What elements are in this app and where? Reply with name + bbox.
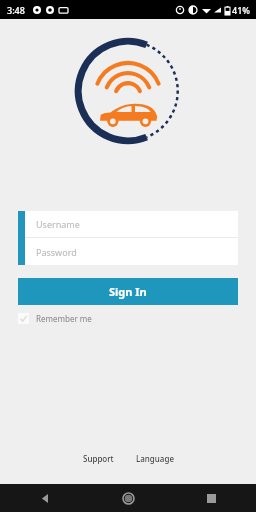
button[interactable]: Support <box>76 449 121 468</box>
button[interactable]: Home <box>117 487 139 509</box>
staticText: 3:48 <box>7 4 25 16</box>
button[interactable]: Sign In <box>18 278 238 305</box>
staticText: 41% <box>232 4 250 16</box>
staticText: Username <box>36 218 80 230</box>
button[interactable]: Language <box>129 449 181 468</box>
button[interactable]: Back <box>34 487 56 509</box>
button[interactable]: Password <box>25 238 238 265</box>
staticText: Sign In <box>109 284 147 299</box>
staticText: Support <box>83 453 114 464</box>
staticText: Language <box>136 453 174 464</box>
staticText: Remember me <box>36 313 92 324</box>
button[interactable]: Remember me <box>18 311 92 326</box>
staticText: Password <box>36 246 77 258</box>
button[interactable]: Recent apps <box>200 487 222 509</box>
button[interactable]: Username <box>25 211 238 237</box>
